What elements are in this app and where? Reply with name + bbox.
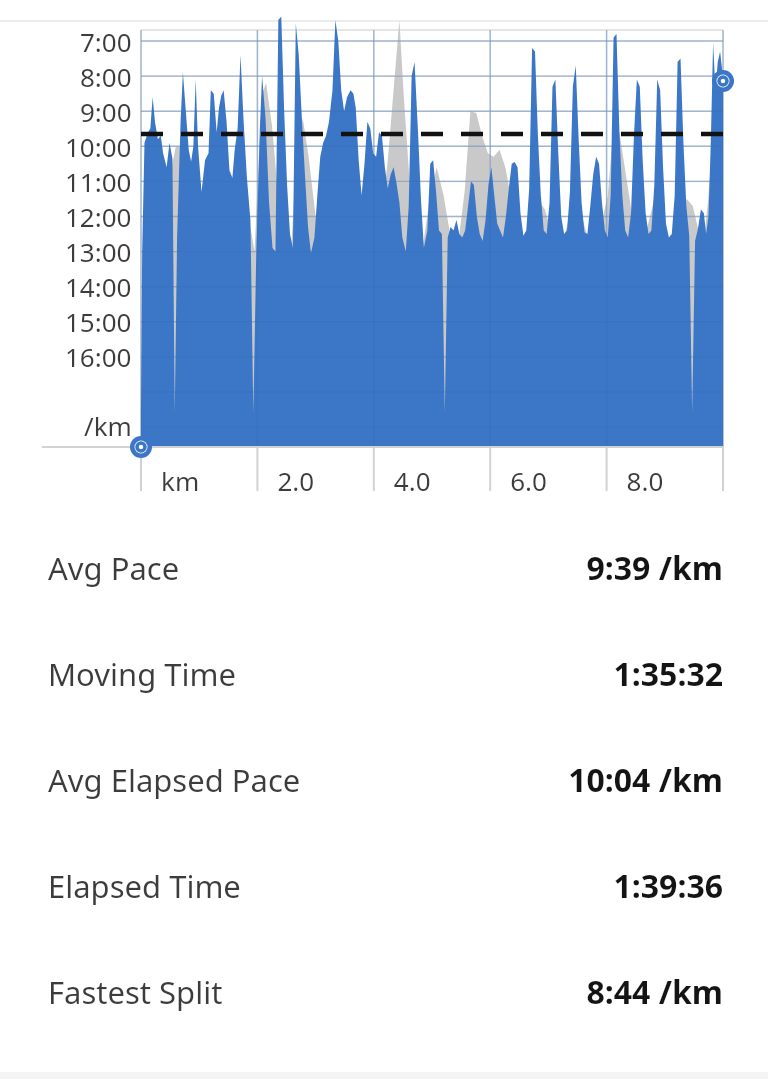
staticText: 8:44 /km (586, 970, 723, 1014)
button[interactable]: Fastest Split (0, 939, 768, 1045)
staticText: Moving Time (48, 653, 236, 695)
staticText: 1:35:32 (613, 652, 723, 696)
staticText: 1:39:36 (613, 864, 723, 908)
button[interactable]: Avg Pace (0, 515, 768, 621)
staticText: Avg Elapsed Pace (48, 759, 301, 801)
button[interactable]: Elapsed Time (0, 833, 768, 939)
button[interactable]: Avg Elapsed Pace (0, 727, 768, 833)
staticText: 9:39 /km (586, 546, 723, 590)
staticText: Avg Pace (48, 547, 180, 589)
button[interactable]: Moving Time (0, 621, 768, 727)
staticText: Elapsed Time (48, 865, 241, 907)
staticText: Fastest Split (48, 971, 223, 1013)
staticText: 10:04 /km (568, 758, 723, 802)
